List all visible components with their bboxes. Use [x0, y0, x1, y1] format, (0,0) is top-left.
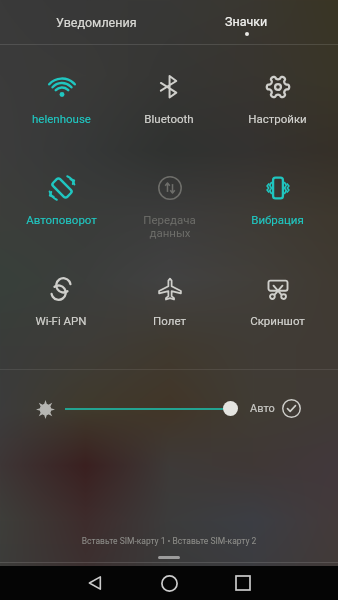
staticText: Значки [225, 14, 268, 29]
button[interactable]: Автоповорот [7, 148, 115, 249]
button[interactable]: Вибрация [223, 148, 331, 249]
button[interactable]: Brightness slider [223, 401, 238, 416]
button[interactable]: Полет [115, 249, 223, 350]
button[interactable]: helenhouse [7, 47, 115, 148]
staticText: Настройки [248, 112, 307, 125]
button[interactable]: Wi-Fi APN [7, 249, 115, 350]
staticText: Передача [143, 213, 196, 226]
staticText: Авто [250, 402, 275, 415]
staticText: Скриншот [250, 314, 305, 327]
staticText: Вибрация [251, 213, 304, 226]
button[interactable]: Home [156, 566, 182, 600]
staticText: Полет [153, 314, 186, 327]
staticText: Автоповорот [26, 213, 97, 226]
button[interactable]: Уведомления [36, 0, 156, 44]
staticText: Уведомления [56, 15, 137, 30]
staticText: Вставьте SIM-карту 1 • Вставьте SIM-карт… [0, 536, 338, 546]
button[interactable]: Передача [115, 148, 223, 249]
staticText: данных [149, 226, 191, 239]
staticText: Wi-Fi APN [35, 314, 87, 327]
button[interactable]: Значки [196, 0, 296, 44]
button[interactable]: Recent apps [230, 566, 256, 600]
button[interactable]: Настройки [223, 47, 331, 148]
staticText: Bluetooth [144, 112, 194, 125]
button[interactable]: Back [82, 566, 108, 600]
button[interactable]: Авто [250, 396, 301, 421]
button[interactable]: Bluetooth [115, 47, 223, 148]
button[interactable]: Скриншот [223, 249, 331, 350]
button[interactable]: Brightness [36, 400, 55, 419]
staticText: helenhouse [32, 112, 91, 125]
